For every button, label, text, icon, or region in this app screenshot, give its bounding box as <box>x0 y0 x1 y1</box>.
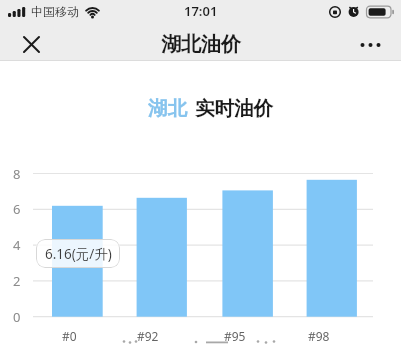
staticText: 6.16(元/升) <box>45 245 112 263</box>
staticText: 中国移动 <box>31 4 79 19</box>
staticText: 17:01 <box>184 2 218 20</box>
staticText: 2 <box>13 272 21 290</box>
staticText: 6 <box>13 200 21 218</box>
staticText: #98 <box>308 328 330 344</box>
staticText: 4 <box>13 236 21 254</box>
staticText: 0 <box>13 308 21 326</box>
button[interactable] <box>17 30 46 59</box>
staticText: #0 <box>62 328 77 344</box>
staticText: #92 <box>137 328 159 344</box>
staticText: 8 <box>13 165 21 183</box>
staticText: 湖北油价 <box>161 32 241 57</box>
button[interactable]: 6.16(元/升) <box>36 239 120 268</box>
staticText: #95 <box>224 328 246 344</box>
staticText: 湖北 <box>148 96 187 121</box>
button[interactable] <box>353 33 387 57</box>
staticText: 实时油价 <box>195 96 273 121</box>
